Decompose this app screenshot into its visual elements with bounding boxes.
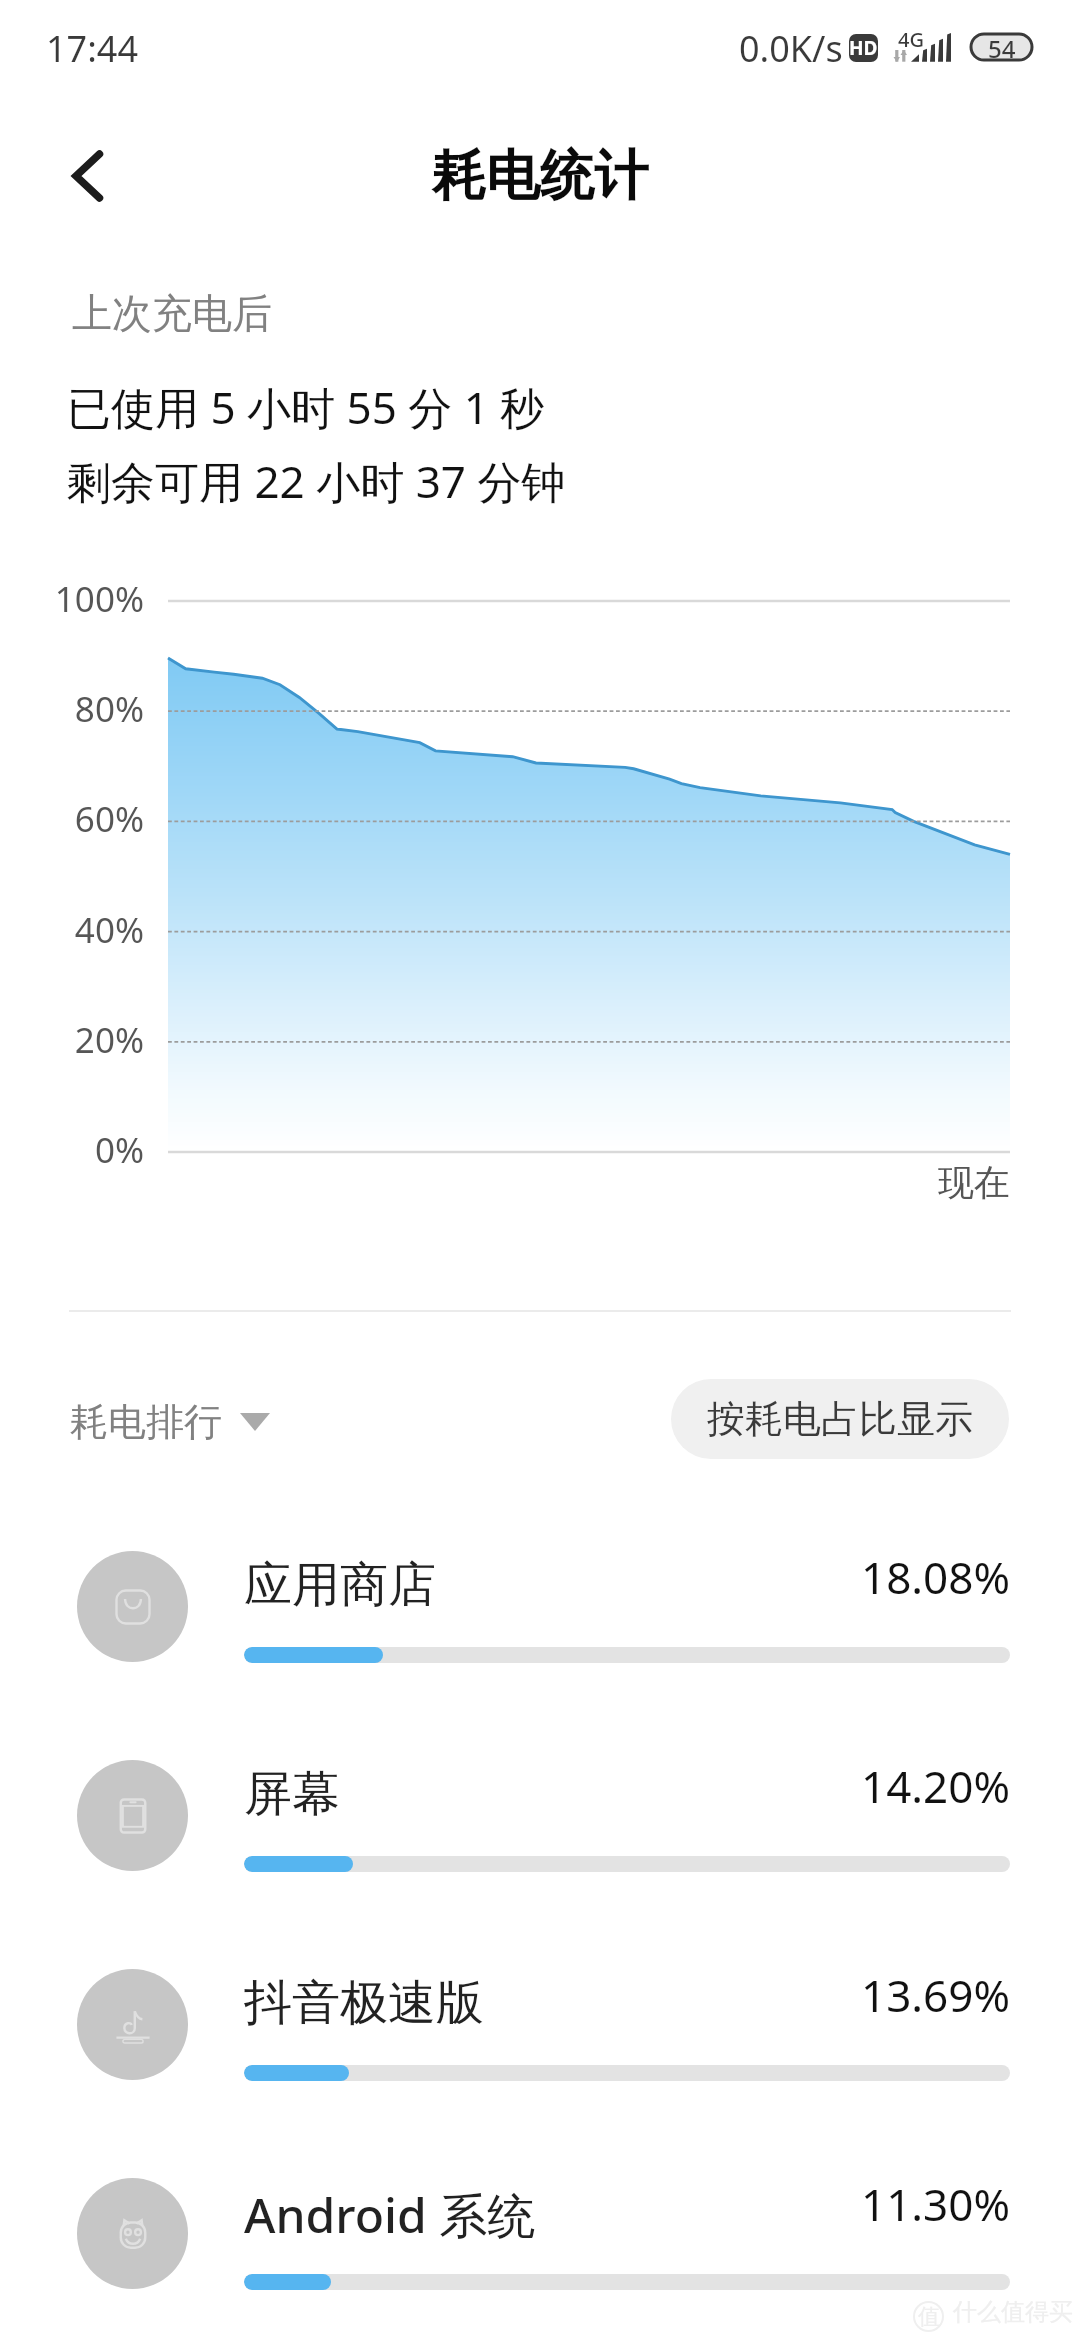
button[interactable]: Back (46, 132, 130, 220)
staticText: 4G (898, 26, 924, 53)
staticText: 应用商店 (244, 1555, 436, 1615)
staticText: 80% (0, 685, 144, 733)
staticText: 抖音极速版 (244, 1973, 484, 2033)
staticText: 100% (0, 575, 144, 623)
button[interactable]: 耗电排行 (70, 1398, 270, 1446)
button[interactable]: 应用商店 (0, 1547, 1080, 1727)
button[interactable]: Android 系统 (0, 2174, 1080, 2340)
staticText: 17:44 (46, 24, 139, 73)
staticText: HD (849, 35, 878, 61)
staticText: 已使用 5 小时 55 分 1 秒 (67, 377, 545, 437)
staticText: Android 系统 (244, 2182, 536, 2248)
staticText: 14.20% (0, 1756, 1010, 1816)
staticText: 值 (918, 2303, 940, 2331)
button[interactable]: 按耗电占比显示 (671, 1379, 1009, 1459)
staticText: 剩余可用 22 小时 37 分钟 (67, 451, 566, 511)
staticText: 20% (0, 1016, 144, 1064)
staticText: 11.30% (0, 2174, 1010, 2234)
staticText: 耗电统计 (432, 142, 648, 210)
staticText: 上次充电后 (72, 288, 272, 338)
staticText: 什么值得买 (953, 2297, 1073, 2327)
staticText: 40% (0, 906, 144, 954)
staticText: 18.08% (0, 1547, 1010, 1607)
button[interactable]: 屏幕 (0, 1756, 1080, 1936)
staticText: 0.0K/s (739, 24, 843, 73)
button[interactable]: 抖音极速版 (0, 1965, 1080, 2145)
staticText: 13.69% (0, 1965, 1010, 2025)
staticText: 屏幕 (244, 1764, 340, 1824)
staticText: 耗电排行 (70, 1398, 222, 1446)
staticText: 60% (0, 795, 144, 843)
staticText: 54 (988, 32, 1016, 62)
staticText: 按耗电占比显示 (707, 1395, 973, 1443)
staticText: 现在 (0, 1160, 1010, 1205)
staticText: 0% (0, 1126, 144, 1174)
